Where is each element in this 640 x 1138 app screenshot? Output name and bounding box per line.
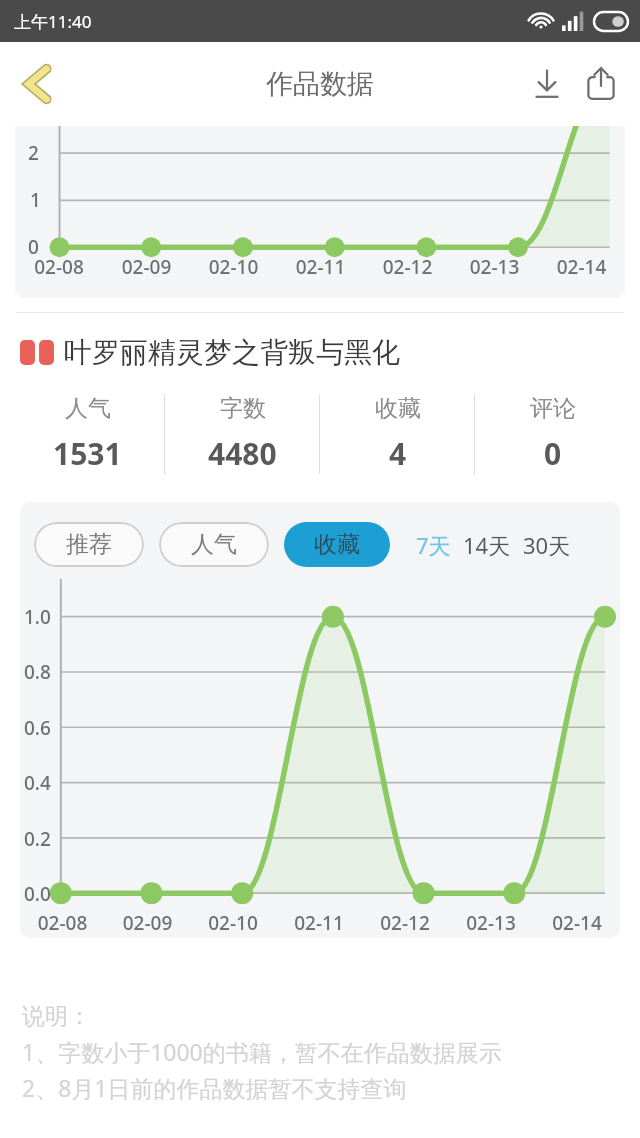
button[interactable]: 人气	[159, 522, 269, 567]
staticText: 02-13	[448, 910, 534, 936]
staticText: 02-09	[103, 254, 190, 280]
staticText: 人气	[65, 394, 111, 423]
button[interactable]: 叶罗丽精灵梦之背叛与黑化	[20, 335, 620, 370]
staticText: 0.4	[24, 770, 51, 796]
staticText: 4480	[208, 433, 277, 474]
staticText: 叶罗丽精灵梦之背叛与黑化	[64, 335, 400, 370]
staticText: 0	[28, 234, 39, 260]
staticText: 0.8	[24, 659, 51, 685]
staticText: 2	[28, 140, 39, 166]
staticText: 说明：	[22, 1002, 91, 1031]
staticText: 0.6	[24, 715, 51, 741]
staticText: 02-10	[190, 910, 276, 936]
staticText: 4	[389, 433, 407, 474]
button[interactable]: Download	[520, 57, 574, 111]
button[interactable]: 推荐	[34, 522, 144, 567]
staticText: 收藏	[314, 530, 360, 559]
staticText: 1	[30, 187, 41, 213]
staticText: 0.2	[24, 826, 51, 852]
staticText: 02-12	[364, 254, 451, 280]
staticText: 02-08	[15, 254, 103, 280]
button[interactable]: 14天	[463, 530, 511, 560]
staticText: 2、8月1日前的作品数据暂不支持查询	[22, 1072, 407, 1103]
button[interactable]: 30天	[523, 530, 571, 560]
staticText: 0	[544, 433, 562, 474]
staticText: 人气	[191, 530, 237, 559]
staticText: 收藏	[375, 394, 421, 423]
staticText: 作品数据	[266, 67, 374, 101]
staticText: 02-11	[277, 254, 364, 280]
staticText: 02-09	[105, 910, 190, 936]
button[interactable]: 评论	[475, 384, 630, 484]
staticText: 02-14	[538, 254, 625, 280]
staticText: 上午11:40	[14, 10, 92, 33]
staticText: 02-13	[451, 254, 538, 280]
button[interactable]: 字数	[165, 384, 320, 484]
button[interactable]: Back	[8, 55, 66, 113]
staticText: 1531	[53, 433, 122, 474]
staticText: 1、字数小于1000的书籍，暂不在作品数据展示	[22, 1036, 502, 1067]
staticText: 02-11	[276, 910, 362, 936]
staticText: 02-14	[534, 910, 620, 936]
button[interactable]: 人气	[10, 384, 165, 484]
button[interactable]: 收藏	[284, 522, 390, 567]
staticText: 字数	[220, 394, 266, 423]
staticText: 1.0	[24, 604, 51, 630]
staticText: 评论	[530, 394, 576, 423]
staticText: 0.0	[24, 881, 51, 907]
button[interactable]: 收藏	[320, 384, 475, 484]
staticText: 02-10	[190, 254, 277, 280]
staticText: 02-08	[20, 910, 105, 936]
staticText: 02-12	[362, 910, 448, 936]
button[interactable]: Share	[574, 57, 628, 111]
staticText: 推荐	[66, 530, 112, 559]
button[interactable]: 7天	[416, 530, 451, 560]
